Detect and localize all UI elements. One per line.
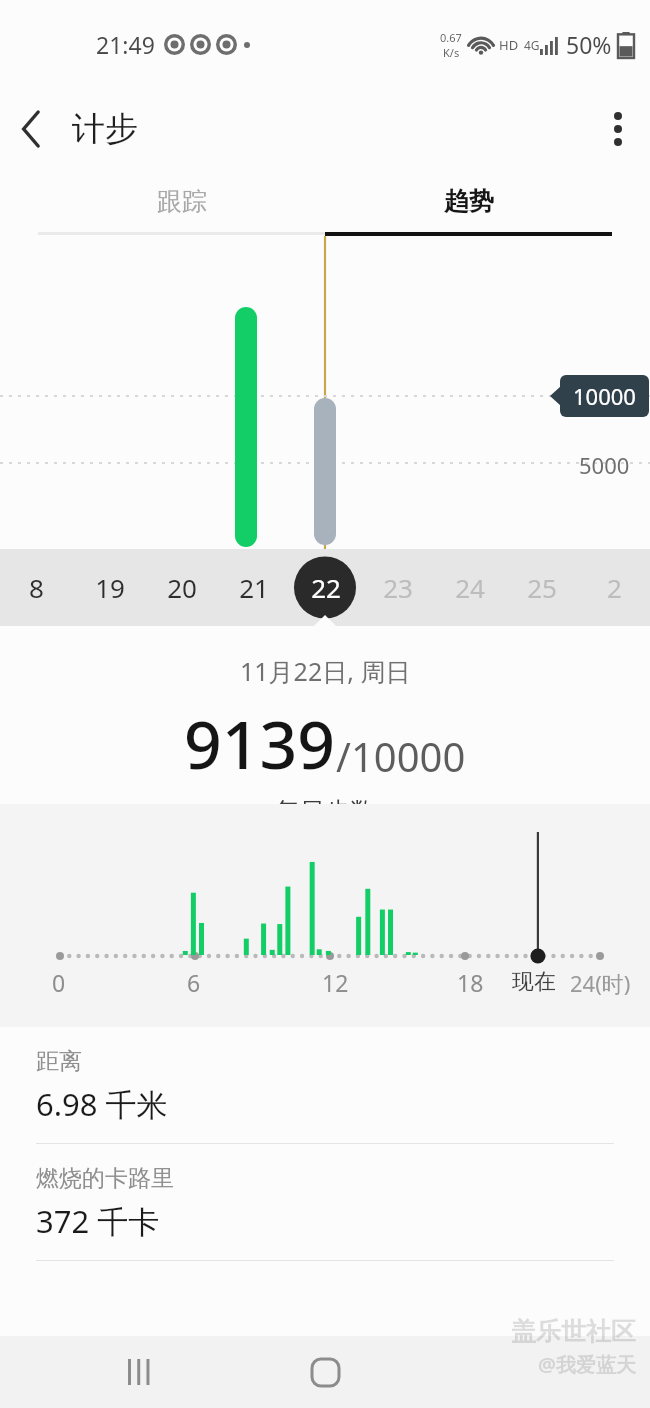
staticText: 盖乐世社区 bbox=[511, 1316, 636, 1347]
staticText: 22 bbox=[311, 570, 341, 605]
staticText: @我爱蓝天 bbox=[538, 1351, 636, 1378]
staticText: K/s bbox=[443, 45, 460, 60]
staticText: HD bbox=[499, 36, 519, 54]
button[interactable]: Back bbox=[0, 97, 64, 161]
staticText: 趋势 bbox=[444, 186, 494, 217]
staticText: 23 bbox=[383, 570, 413, 605]
staticText: 0 bbox=[52, 967, 66, 998]
staticText: 372 千卡 bbox=[36, 1200, 160, 1242]
staticText: 每日步数 bbox=[275, 796, 375, 804]
staticText: 25 bbox=[527, 570, 557, 605]
staticText: 2 bbox=[607, 570, 622, 605]
button[interactable]: 23 bbox=[362, 549, 434, 626]
staticText: 9139 bbox=[184, 698, 336, 788]
staticText: 0.67 bbox=[440, 30, 462, 45]
button[interactable]: 24 bbox=[434, 549, 506, 626]
staticText: 8 bbox=[29, 570, 44, 605]
staticText: 19 bbox=[95, 570, 125, 605]
staticText: 12 bbox=[322, 967, 349, 998]
button[interactable]: 22 bbox=[290, 549, 362, 626]
staticText: 现在 bbox=[512, 968, 556, 996]
staticText: 6.98 千米 bbox=[36, 1083, 168, 1125]
button[interactable]: 距离 bbox=[0, 1027, 650, 1144]
button[interactable]: 燃烧的卡路里 bbox=[0, 1144, 650, 1261]
button[interactable]: 跟踪 bbox=[38, 170, 325, 232]
staticText: 计步 bbox=[72, 108, 138, 150]
staticText: 24(时) bbox=[570, 968, 631, 998]
button[interactable]: 21 bbox=[218, 549, 290, 626]
button[interactable]: Recent apps bbox=[95, 1336, 185, 1408]
button[interactable]: 19 bbox=[73, 549, 146, 626]
staticText: 50% bbox=[566, 29, 612, 60]
staticText: 10000 bbox=[573, 381, 636, 411]
button[interactable]: 20 bbox=[146, 549, 218, 626]
staticText: 11月22日, 周日 bbox=[240, 654, 411, 688]
staticText: 18 bbox=[457, 967, 484, 998]
button[interactable]: More options bbox=[586, 97, 650, 161]
staticText: /10000 bbox=[336, 729, 466, 783]
staticText: 21:49 bbox=[96, 29, 155, 60]
button[interactable]: Home bbox=[280, 1336, 370, 1408]
staticText: 燃烧的卡路里 bbox=[36, 1164, 174, 1193]
staticText: 21 bbox=[239, 570, 269, 605]
staticText: 4G bbox=[524, 37, 540, 53]
button[interactable]: 2 bbox=[578, 549, 650, 626]
staticText: 5000 bbox=[579, 450, 630, 480]
staticText: 6 bbox=[187, 967, 201, 998]
staticText: 距离 bbox=[36, 1047, 82, 1076]
button[interactable]: 8 bbox=[0, 549, 73, 626]
staticText: 跟踪 bbox=[157, 186, 207, 217]
button[interactable]: 25 bbox=[506, 549, 578, 626]
button[interactable]: Back bbox=[465, 1336, 555, 1408]
staticText: 20 bbox=[167, 570, 197, 605]
staticText: 24 bbox=[455, 570, 485, 605]
button[interactable]: 趋势 bbox=[325, 170, 612, 232]
